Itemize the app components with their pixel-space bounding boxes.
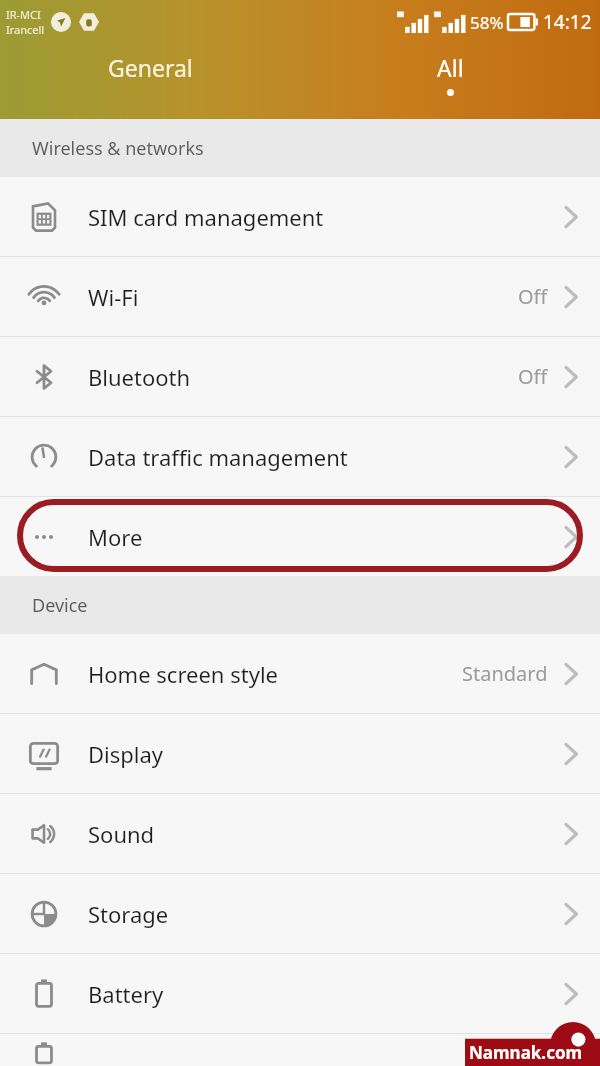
staticText: Device	[32, 593, 88, 618]
button[interactable]: Display	[0, 714, 600, 793]
staticText: Namnak.com	[469, 1041, 583, 1064]
staticText: Wi-Fi	[88, 282, 139, 312]
button[interactable]: SIM card management	[0, 177, 600, 256]
staticText: Home screen style	[88, 659, 278, 689]
button[interactable]: Data traffic	[0, 417, 600, 496]
staticText: Wireless & networks	[32, 136, 204, 161]
staticText: IR-MCI	[6, 7, 41, 22]
staticText: Off	[518, 363, 548, 390]
button[interactable]: Storage	[0, 874, 600, 953]
staticText: Sound	[88, 819, 155, 849]
button[interactable]: Wi-Fi	[0, 257, 600, 336]
staticText: Data traffic management	[88, 442, 348, 472]
button[interactable]: Sound	[0, 794, 600, 873]
button[interactable]: Home screen style	[0, 634, 600, 713]
staticText: Display	[88, 739, 164, 769]
button[interactable]: All	[300, 52, 600, 96]
staticText: Bluetooth	[88, 362, 191, 392]
staticText: Off	[518, 283, 548, 310]
staticText: Irancell	[6, 22, 45, 37]
button[interactable]: More	[0, 497, 600, 576]
staticText: Storage	[88, 899, 169, 929]
staticText: SIM card management	[88, 202, 324, 232]
staticText: General	[108, 52, 193, 83]
staticText: More	[88, 522, 143, 552]
button[interactable]: General	[0, 52, 300, 119]
staticText: 14:12	[543, 9, 592, 35]
button[interactable]: Bluetooth	[0, 337, 600, 416]
staticText: Standard	[462, 660, 548, 687]
button[interactable]: Battery	[0, 954, 600, 1033]
staticText: All	[437, 52, 464, 83]
staticText: Battery	[88, 979, 164, 1009]
staticText: 58%	[470, 11, 504, 34]
